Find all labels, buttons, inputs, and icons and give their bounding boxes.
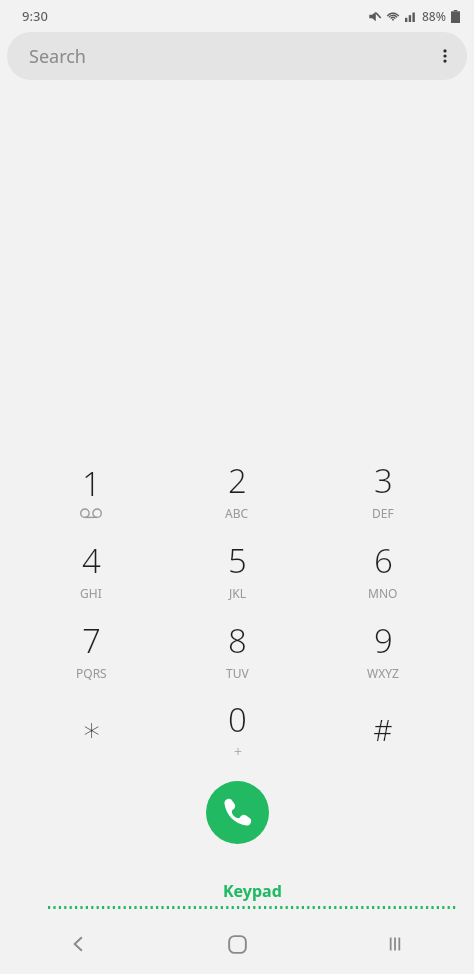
- staticText: 8: [228, 618, 247, 663]
- button[interactable]: Search: [7, 32, 467, 80]
- button[interactable]: 5: [164, 529, 310, 609]
- staticText: PQRS: [76, 665, 107, 681]
- staticText: Search: [29, 44, 86, 69]
- button[interactable]: Home: [158, 920, 316, 968]
- button[interactable]: Call: [206, 781, 269, 844]
- button[interactable]: Back: [0, 920, 158, 968]
- staticText: DEF: [372, 505, 394, 521]
- button[interactable]: 6: [310, 529, 456, 609]
- staticText: 0: [228, 697, 247, 742]
- staticText: #: [373, 709, 393, 750]
- staticText: JKL: [229, 585, 246, 601]
- staticText: 1: [82, 461, 101, 506]
- staticText: +: [234, 742, 242, 761]
- button[interactable]: More options: [423, 34, 467, 78]
- staticText: ∗: [81, 710, 102, 748]
- button[interactable]: 1: [18, 449, 164, 529]
- staticText: 5: [228, 538, 247, 583]
- staticText: Keypad: [223, 880, 282, 902]
- staticText: GHI: [80, 585, 102, 601]
- staticText: ABC: [225, 505, 249, 521]
- button[interactable]: Recent apps: [316, 920, 474, 968]
- staticText: 4: [82, 538, 101, 583]
- button[interactable]: ∗: [18, 689, 164, 769]
- button[interactable]: #: [310, 689, 456, 769]
- staticText: 3: [374, 458, 393, 503]
- button[interactable]: 0: [164, 689, 310, 769]
- staticText: 7: [82, 618, 101, 663]
- staticText: 2: [228, 458, 247, 503]
- button[interactable]: 3: [310, 449, 456, 529]
- button[interactable]: 8: [164, 609, 310, 689]
- staticText: TUV: [226, 665, 249, 681]
- staticText: 6: [374, 538, 393, 583]
- button[interactable]: 4: [18, 529, 164, 609]
- button[interactable]: 7: [18, 609, 164, 689]
- staticText: MNO: [368, 585, 398, 601]
- staticText: 88%: [422, 8, 446, 24]
- staticText: 9: [374, 618, 393, 663]
- button[interactable]: 2: [164, 449, 310, 529]
- button[interactable]: Keypad: [30, 874, 474, 915]
- staticText: WXYZ: [367, 665, 399, 681]
- button[interactable]: 9: [310, 609, 456, 689]
- staticText: 9:30: [22, 7, 48, 25]
